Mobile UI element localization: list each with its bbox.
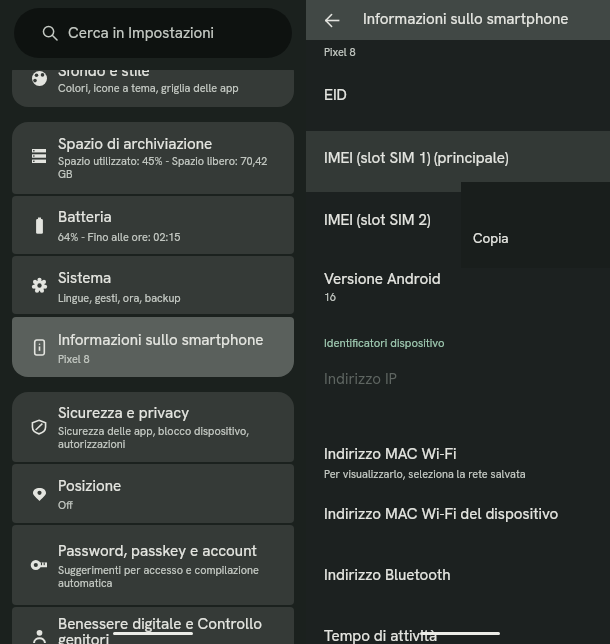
staticText: Tempo di attività: [324, 626, 438, 644]
staticText: Pixel 8: [324, 45, 356, 59]
button[interactable]: [306, 200, 610, 238]
button[interactable]: [306, 138, 610, 176]
button[interactable]: [306, 494, 610, 532]
staticText: Per visualizzarlo, seleziona la rete sal…: [324, 467, 526, 481]
staticText: Identificatori dispositivo: [324, 336, 445, 351]
staticText: Indirizzo MAC Wi-Fi: [324, 444, 457, 464]
staticText: Batteria: [58, 207, 288, 227]
staticText: EID: [324, 85, 347, 105]
staticText: Indirizzo Bluetooth: [324, 565, 451, 585]
staticText: Sicurezza delle app, blocco dispositivo,…: [58, 424, 258, 451]
button[interactable]: [12, 317, 294, 377]
staticText: Off: [58, 498, 274, 512]
staticText: Indirizzo IP: [324, 369, 398, 389]
button[interactable]: [12, 392, 294, 462]
button[interactable]: [12, 256, 294, 314]
button[interactable]: [306, 131, 610, 192]
staticText: Posizione: [58, 476, 288, 496]
staticText: Colori, icone a tema, griglia delle app: [58, 81, 274, 95]
staticText: 64% - Fino alle ore: 02:15: [58, 230, 274, 244]
staticText: Sistema: [58, 268, 288, 288]
staticText: 16: [324, 290, 337, 304]
staticText: Informazioni sullo smartphone: [363, 9, 569, 29]
staticText: Spazio di archiviazione: [58, 134, 288, 154]
staticText: Spazio utilizzato: 45% - Spazio libero: …: [58, 154, 274, 181]
button[interactable]: [306, 616, 610, 644]
button[interactable]: Copia: [461, 182, 610, 268]
button[interactable]: Back: [312, 0, 352, 40]
staticText: IMEI (slot SIM 2): [324, 210, 431, 230]
staticText: Lingue, gesti, ora, backup: [58, 291, 274, 305]
button[interactable]: [12, 196, 294, 254]
button[interactable]: [12, 607, 294, 644]
staticText: Sfondo e stile: [58, 61, 288, 81]
button[interactable]: [12, 122, 294, 194]
staticText: Versione Android: [324, 269, 441, 289]
button[interactable]: [306, 75, 610, 113]
button[interactable]: [306, 434, 610, 472]
button[interactable]: [12, 525, 294, 605]
button[interactable]: Cerca in Impostazioni: [14, 8, 292, 58]
staticText: IMEI (slot SIM 1) (principale): [324, 148, 509, 168]
button[interactable]: [306, 259, 610, 297]
staticText: Sicurezza e privacy: [58, 403, 288, 423]
button[interactable]: [12, 464, 294, 523]
staticText: Indirizzo MAC Wi-Fi del dispositivo: [324, 504, 559, 524]
staticText: Copia: [473, 229, 509, 247]
staticText: Password, passkey e account: [58, 541, 288, 561]
staticText: Pixel 8: [58, 352, 274, 366]
button[interactable]: [12, 56, 294, 107]
button[interactable]: [306, 555, 610, 593]
staticText: Cerca in Impostazioni: [68, 23, 215, 43]
staticText: Suggerimenti per accesso e compilazione …: [58, 563, 264, 590]
staticText: Informazioni sullo smartphone: [58, 330, 288, 350]
staticText: Benessere digitale e Controllo genitori: [58, 614, 273, 644]
